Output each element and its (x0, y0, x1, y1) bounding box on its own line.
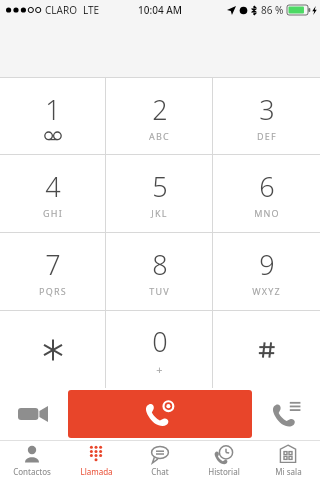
staticText: DEF (257, 130, 277, 142)
button[interactable]: 9 (213, 233, 320, 310)
button[interactable]: 6 (213, 155, 320, 232)
button[interactable]: Historial (192, 440, 256, 480)
staticText: PQRS (39, 285, 67, 297)
staticText: 0 (152, 323, 168, 360)
button[interactable] (0, 311, 106, 388)
button[interactable]: 0 (106, 311, 213, 388)
staticText: Contactos (13, 466, 51, 477)
button[interactable]: Mi sala (256, 440, 320, 480)
staticText: 6 (259, 168, 275, 205)
staticText: LTE (83, 3, 100, 17)
button[interactable]: 1 (0, 78, 106, 154)
staticText: JKL (151, 207, 168, 219)
staticText: CLARO (45, 3, 77, 17)
staticText: 4 (45, 168, 61, 205)
staticText: Historial (208, 466, 240, 477)
staticText: GHI (43, 207, 63, 219)
staticText: WXYZ (252, 285, 281, 297)
staticText: 7 (45, 246, 61, 283)
button[interactable]: Llamada (64, 440, 128, 480)
staticText: 5 (152, 168, 168, 205)
staticText: Mi sala (275, 466, 302, 477)
button[interactable]: Call (68, 390, 252, 438)
button[interactable] (213, 311, 320, 388)
button[interactable]: 7 (0, 233, 106, 310)
staticText: 3 (259, 91, 275, 128)
staticText: + (156, 362, 164, 377)
button[interactable]: Contactos (0, 440, 64, 480)
staticText: 10:04 AM (138, 3, 182, 17)
staticText: 9 (259, 246, 275, 283)
button[interactable]: 4 (0, 155, 106, 232)
button[interactable]: Call options (254, 388, 320, 440)
button[interactable]: 8 (106, 233, 213, 310)
staticText: 8 (152, 246, 168, 283)
staticText: Llamada (80, 466, 113, 477)
button[interactable]: Video call (0, 388, 66, 440)
staticText: ABC (149, 130, 170, 142)
staticText: 2 (152, 91, 168, 128)
staticText: MNO (254, 207, 280, 219)
button[interactable]: Chat (128, 440, 192, 480)
staticText: 1 (45, 91, 61, 128)
button[interactable]: 5 (106, 155, 213, 232)
staticText: Chat (151, 466, 169, 477)
button[interactable]: 3 (213, 78, 320, 154)
staticText: TUV (149, 285, 170, 297)
button[interactable]: 2 (106, 78, 213, 154)
staticText: 86 % (261, 3, 284, 17)
